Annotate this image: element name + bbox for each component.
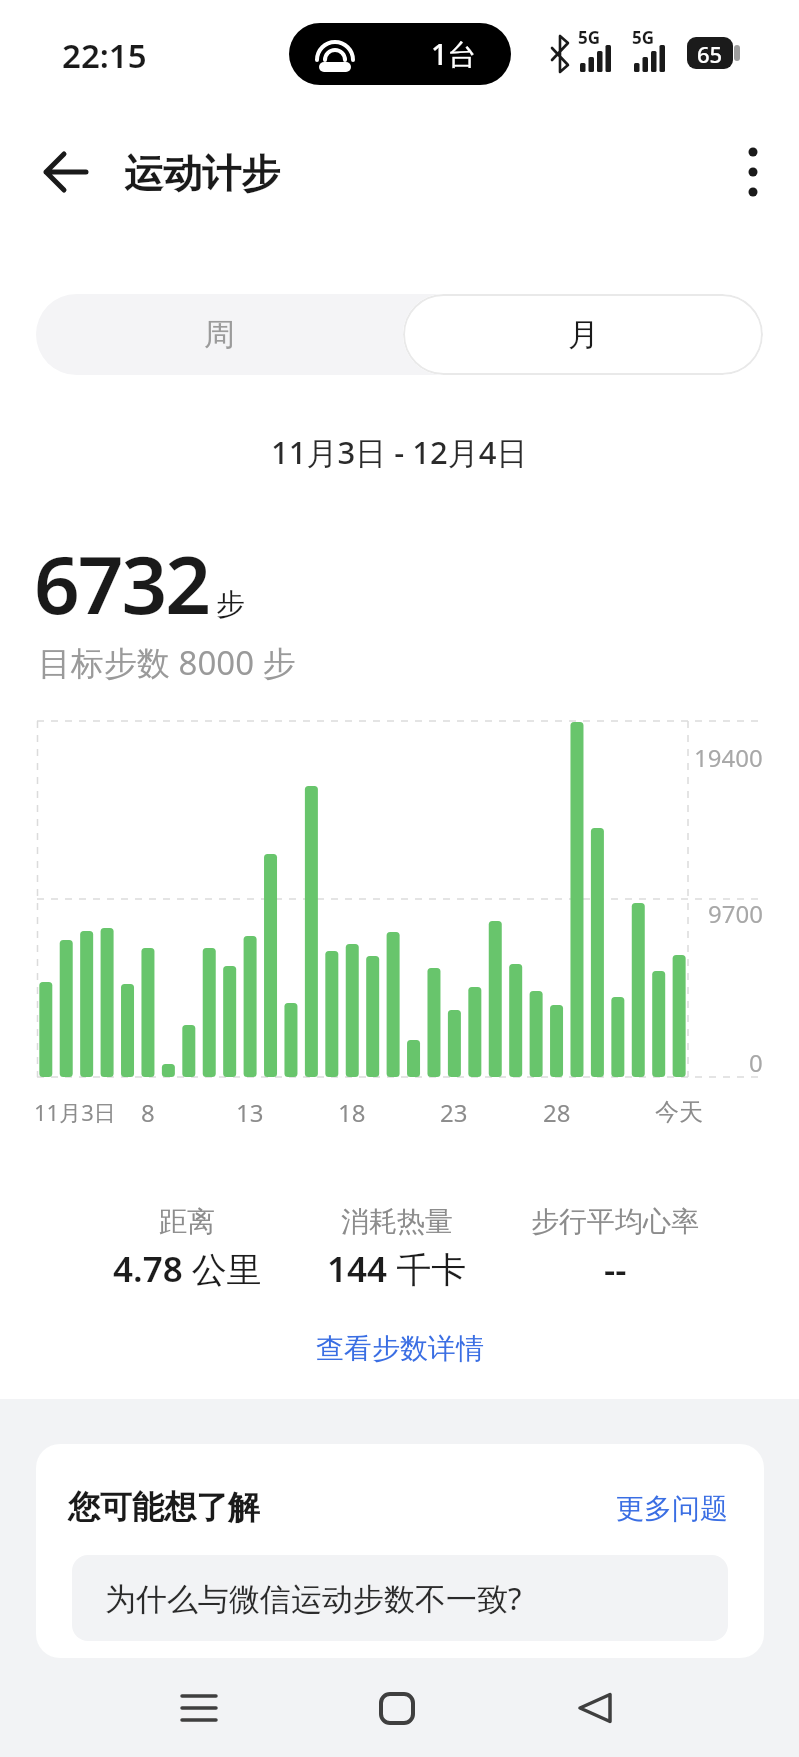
- staticText: 9700: [708, 897, 763, 930]
- staticText: 1台: [431, 34, 477, 74]
- button[interactable]: 周: [36, 294, 403, 375]
- button[interactable]: [155, 1664, 243, 1752]
- button[interactable]: 月: [403, 294, 763, 375]
- button[interactable]: [353, 1664, 441, 1752]
- staticText: 23: [440, 1096, 468, 1129]
- staticText: 18: [338, 1096, 366, 1129]
- staticText: 144 千卡: [327, 1245, 467, 1293]
- staticText: 4.78 公里: [113, 1245, 262, 1293]
- staticText: 月: [568, 315, 599, 354]
- staticText: 11月3日 - 12月4日: [271, 431, 528, 473]
- staticText: 步: [216, 586, 245, 623]
- button[interactable]: [718, 136, 788, 208]
- button[interactable]: 查看步数详情: [250, 1325, 550, 1371]
- staticText: --: [604, 1245, 627, 1293]
- staticText: 为什么与微信运动步数不一致?: [105, 1577, 522, 1619]
- staticText: 今天: [655, 1097, 703, 1127]
- staticText: 步行平均心率: [531, 1204, 699, 1239]
- staticText: 8: [141, 1096, 155, 1129]
- staticText: 消耗热量: [341, 1204, 453, 1239]
- staticText: 运动计步: [124, 149, 280, 198]
- staticText: 更多问题: [616, 1491, 728, 1526]
- staticText: 65: [697, 39, 723, 67]
- staticText: 5G: [578, 26, 601, 46]
- staticText: 13: [236, 1096, 264, 1129]
- button[interactable]: [551, 1664, 639, 1752]
- staticText: 距离: [159, 1204, 215, 1239]
- staticText: 22:15: [62, 33, 147, 75]
- staticText: 0: [749, 1046, 763, 1079]
- staticText: 28: [543, 1096, 571, 1129]
- staticText: 5G: [632, 26, 655, 46]
- staticText: 19400: [694, 741, 763, 774]
- staticText: 目标步数 8000 步: [38, 640, 296, 685]
- staticText: 周: [204, 315, 235, 354]
- staticText: 6732: [34, 528, 210, 637]
- staticText: 您可能想了解: [68, 1487, 260, 1527]
- staticText: 查看步数详情: [316, 1331, 484, 1366]
- button[interactable]: 为什么与微信运动步数不一致?: [72, 1555, 728, 1641]
- button[interactable]: 更多问题: [568, 1487, 728, 1529]
- staticText: 11月3日: [34, 1097, 116, 1127]
- button[interactable]: [28, 136, 104, 208]
